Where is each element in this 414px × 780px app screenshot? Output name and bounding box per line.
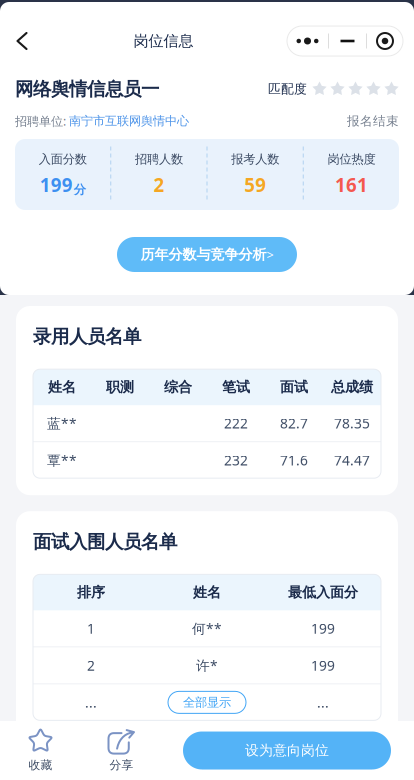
staticText: 笔试 <box>222 378 250 396</box>
staticText: 岗位信息 <box>133 31 193 50</box>
staticText: 历年分数与竞争分析 <box>140 246 266 263</box>
staticText: 199 <box>311 619 335 638</box>
staticText: 姓名 <box>48 378 76 396</box>
staticText: 排序 <box>77 583 105 601</box>
staticText: 网络舆情信息员一 <box>15 77 159 101</box>
staticText: 覃** <box>47 451 77 469</box>
staticText: 总成绩 <box>331 378 373 396</box>
staticText: 许* <box>196 656 218 675</box>
staticText: 199 <box>311 656 335 675</box>
button[interactable]: 返回 <box>4 23 40 59</box>
button[interactable]: 关闭 <box>367 26 403 56</box>
staticText: 分享 <box>109 758 133 772</box>
staticText: 报考人数 <box>231 152 279 167</box>
staticText: 分 <box>74 182 86 197</box>
staticText: ... <box>85 693 97 712</box>
button[interactable]: 分享 <box>81 721 162 780</box>
button[interactable]: 最小化 <box>329 26 366 56</box>
staticText: 匹配度 <box>268 81 307 97</box>
staticText: 全部显示 <box>183 695 231 710</box>
staticText: 姓名 <box>193 583 221 601</box>
staticText: 录用人员名单 <box>33 325 141 348</box>
staticText: 2 <box>153 172 164 197</box>
staticText: > <box>266 246 273 263</box>
staticText: 综合 <box>164 378 192 396</box>
button[interactable]: 设为意向岗位 <box>183 731 391 769</box>
staticText: 收藏 <box>28 758 52 772</box>
staticText: 199 <box>40 172 73 197</box>
staticText: 蓝** <box>47 414 77 432</box>
staticText: 78.35 <box>334 414 370 432</box>
staticText: 面试 <box>280 378 308 396</box>
staticText: 82.7 <box>280 414 308 432</box>
staticText: 2 <box>87 656 95 675</box>
staticText: 南宁市互联网舆情中心 <box>69 113 189 129</box>
staticText: 面试入围人员名单 <box>33 530 177 553</box>
staticText: 职测 <box>106 378 134 396</box>
staticText: 设为意向岗位 <box>245 742 329 759</box>
staticText: 何** <box>192 619 222 638</box>
staticText: 报名结束 <box>347 113 399 129</box>
button[interactable]: 历年分数与竞争分析 <box>117 237 297 272</box>
staticText: 59 <box>244 172 266 197</box>
staticText: ... <box>317 693 329 712</box>
button[interactable]: 更多 <box>287 26 328 56</box>
staticText: 入面分数 <box>39 152 87 167</box>
staticText: 161 <box>335 172 368 197</box>
button[interactable]: 南宁市互联网舆情中心 <box>69 113 189 129</box>
staticText: 1 <box>87 619 95 638</box>
staticText: 232 <box>224 451 248 469</box>
button[interactable]: 收藏 <box>0 721 81 780</box>
button[interactable]: 全部显示 <box>168 691 246 713</box>
staticText: 招聘人数 <box>135 152 183 167</box>
staticText: 最低入面分 <box>288 583 358 601</box>
staticText: 222 <box>224 414 248 432</box>
staticText: 招聘单位: <box>15 113 69 129</box>
staticText: 71.6 <box>280 451 308 469</box>
staticText: 74.47 <box>334 451 370 469</box>
staticText: 岗位热度 <box>327 152 375 167</box>
